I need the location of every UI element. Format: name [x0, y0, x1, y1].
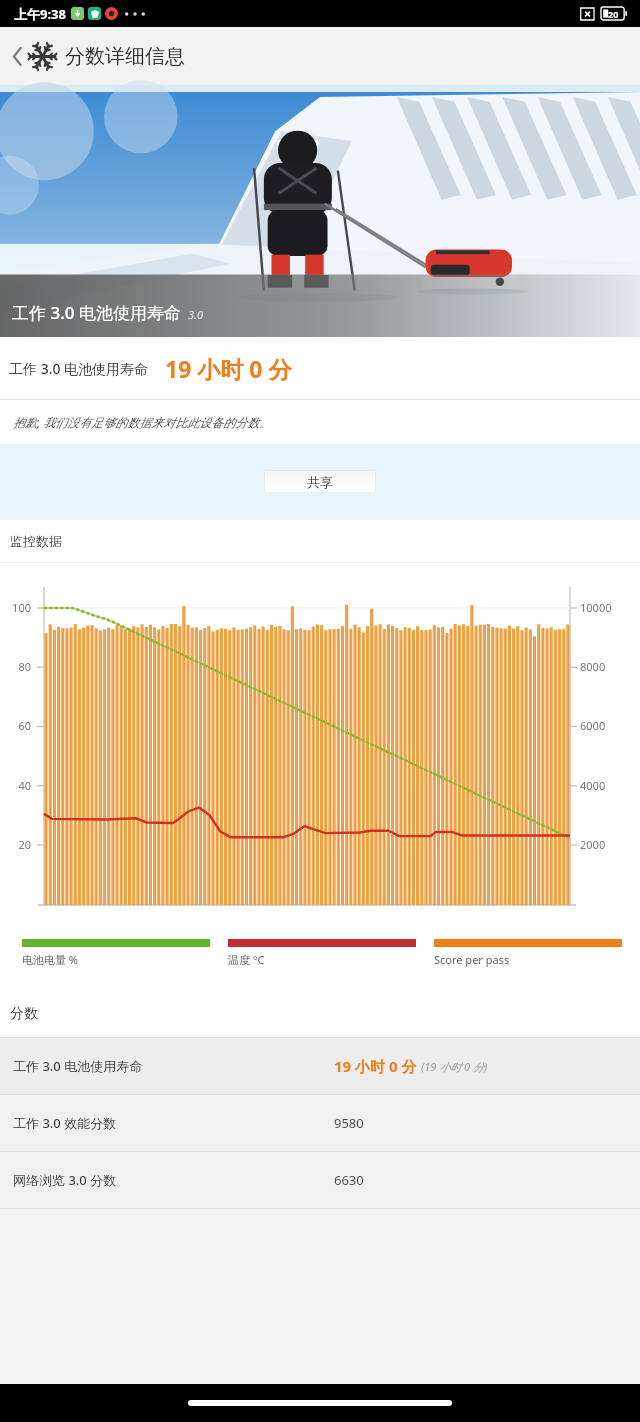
staticText: 10000	[580, 600, 612, 615]
staticText: 80	[0, 659, 31, 674]
staticText: 20	[608, 8, 619, 20]
button[interactable]: Back	[6, 36, 28, 76]
staticText: 40	[0, 778, 31, 793]
staticText: 工作 3.0 电池使用寿命	[13, 1057, 143, 1075]
staticText: 工作 3.0 电池使用寿命	[12, 301, 181, 324]
staticText: 8000	[580, 659, 606, 674]
staticText: 抱歉, 我们没有足够的数据来对比此设备的分数。	[13, 414, 272, 430]
button[interactable]: 工作 3.0 电池使用寿命	[0, 337, 640, 399]
staticText: 2000	[580, 837, 606, 852]
staticText: 6630	[334, 1171, 364, 1189]
staticText: 工作 3.0 效能分数	[13, 1114, 117, 1132]
staticText: 温度 °C	[228, 952, 265, 967]
staticText: 电池电量 %	[22, 952, 79, 967]
button[interactable]: 工作 3.0 电池使用寿命	[0, 1038, 640, 1094]
staticText: 工作 3.0 电池使用寿命	[9, 359, 149, 378]
staticText: 100	[0, 600, 31, 615]
staticText: 分数	[10, 1005, 38, 1023]
staticText: 20	[0, 837, 31, 852]
staticText: 3.0	[188, 307, 203, 322]
staticText: 60	[0, 718, 31, 733]
staticText: 19 小时 0 分	[165, 353, 292, 384]
staticText: 分数详细信息	[65, 44, 185, 69]
staticText: 6000	[580, 718, 606, 733]
staticText: 监控数据	[10, 533, 62, 549]
staticText: 19 小时 0 分	[334, 1056, 417, 1076]
staticText: 9580	[334, 1114, 364, 1132]
staticText: 共享	[307, 474, 333, 490]
button[interactable]: 共享	[264, 470, 376, 493]
staticText: (19 小时 0 分)	[421, 1059, 488, 1074]
staticText: 网络浏览 3.0 分数	[13, 1171, 117, 1189]
button[interactable]: 网络浏览 3.0 分数	[0, 1152, 640, 1208]
staticText: 上午9:38	[14, 5, 66, 23]
staticText: 4000	[580, 778, 606, 793]
button[interactable]: 工作 3.0 效能分数	[0, 1095, 640, 1151]
staticText: Score per pass	[434, 952, 510, 967]
